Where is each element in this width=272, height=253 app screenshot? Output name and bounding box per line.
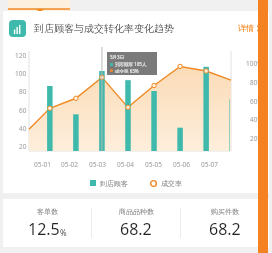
staticText: 60% bbox=[250, 97, 263, 106]
staticText: 68.2 bbox=[120, 218, 152, 240]
staticText: 成交率 bbox=[161, 179, 182, 188]
staticText: 05-05 bbox=[145, 160, 162, 169]
staticText: 详情 bbox=[238, 23, 254, 33]
staticText: 成交率 63% bbox=[115, 68, 139, 73]
staticText: 20 bbox=[19, 142, 27, 151]
staticText: 到店顾客与成交转化率变化趋势 bbox=[34, 22, 174, 35]
staticText: 到店顾客 bbox=[100, 179, 128, 188]
button[interactable]: 详情 bbox=[238, 23, 261, 33]
staticText: 到店顾客 105人 bbox=[115, 61, 147, 67]
staticText: 80% bbox=[250, 78, 263, 87]
staticText: 05-01 bbox=[34, 160, 51, 169]
staticText: 68.2 bbox=[209, 218, 241, 240]
button[interactable]: 客单数 bbox=[3, 199, 91, 247]
staticText: 05-06 bbox=[173, 160, 190, 169]
staticText: 商品品种数 bbox=[119, 207, 154, 216]
staticText: 客单数 bbox=[37, 207, 58, 216]
staticText: 60 bbox=[19, 106, 27, 115]
button[interactable]: 商品品种数 bbox=[92, 199, 180, 247]
button[interactable]: 购买件数 bbox=[181, 199, 269, 247]
staticText: 40% bbox=[250, 115, 263, 124]
staticText: 20% bbox=[250, 134, 263, 143]
staticText: 12.5 bbox=[28, 218, 60, 240]
staticText: 100% bbox=[246, 59, 263, 68]
staticText: 05-07 bbox=[201, 160, 218, 169]
button[interactable]: 到店顾客与成交转化率变化趋势 bbox=[3, 11, 269, 45]
staticText: 05-03 bbox=[89, 160, 106, 169]
staticText: 5月3日 bbox=[110, 54, 125, 60]
staticText: 购买件数 bbox=[211, 207, 239, 216]
other: Data tooltip bbox=[107, 52, 157, 75]
staticText: 120 bbox=[15, 51, 27, 60]
staticText: 80 bbox=[19, 87, 27, 96]
staticText: 100 bbox=[15, 69, 27, 78]
staticText: 40 bbox=[19, 124, 27, 133]
staticText: 05-02 bbox=[61, 160, 78, 169]
staticText: % bbox=[60, 227, 67, 238]
staticText: 05-04 bbox=[117, 160, 134, 169]
